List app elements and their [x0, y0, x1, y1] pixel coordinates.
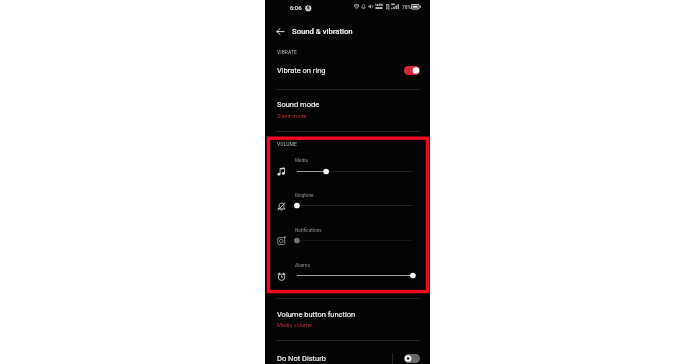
staticText: 78%	[402, 4, 412, 10]
button[interactable]: Vibrate on ring	[265, 59, 430, 81]
staticText: Volume button function	[277, 310, 356, 319]
button[interactable]: Volume button function	[265, 303, 430, 333]
staticText: Media	[295, 158, 308, 164]
staticText: Sound mode	[277, 100, 320, 109]
staticText: VOLUME	[277, 141, 297, 147]
button[interactable]: Media volume	[265, 155, 430, 180]
button[interactable]: Notifications volume	[265, 225, 430, 250]
button[interactable]: Alarms volume	[265, 260, 430, 285]
button[interactable]: Sound mode	[265, 93, 430, 121]
button[interactable]: Do Not Disturb toggle	[404, 354, 420, 363]
staticText: VIBRATE	[277, 49, 297, 55]
button[interactable]: Ringtone volume	[265, 190, 430, 215]
staticText: Silent mode	[277, 113, 307, 120]
staticText: Ringtone	[295, 193, 314, 199]
staticText: Vibrate on ring	[277, 66, 326, 75]
button[interactable]: Do Not Disturb	[265, 350, 430, 364]
staticText: Media volume	[277, 322, 312, 329]
staticText: Alarms	[295, 263, 310, 269]
staticText: Do Not Disturb	[277, 354, 326, 363]
button[interactable]: Vibrate on ring toggle	[404, 66, 420, 75]
staticText: Notifications	[295, 228, 322, 234]
staticText: 6:06	[290, 4, 302, 11]
staticText: Sound & vibration	[292, 27, 353, 36]
button[interactable]: Back	[273, 24, 287, 38]
